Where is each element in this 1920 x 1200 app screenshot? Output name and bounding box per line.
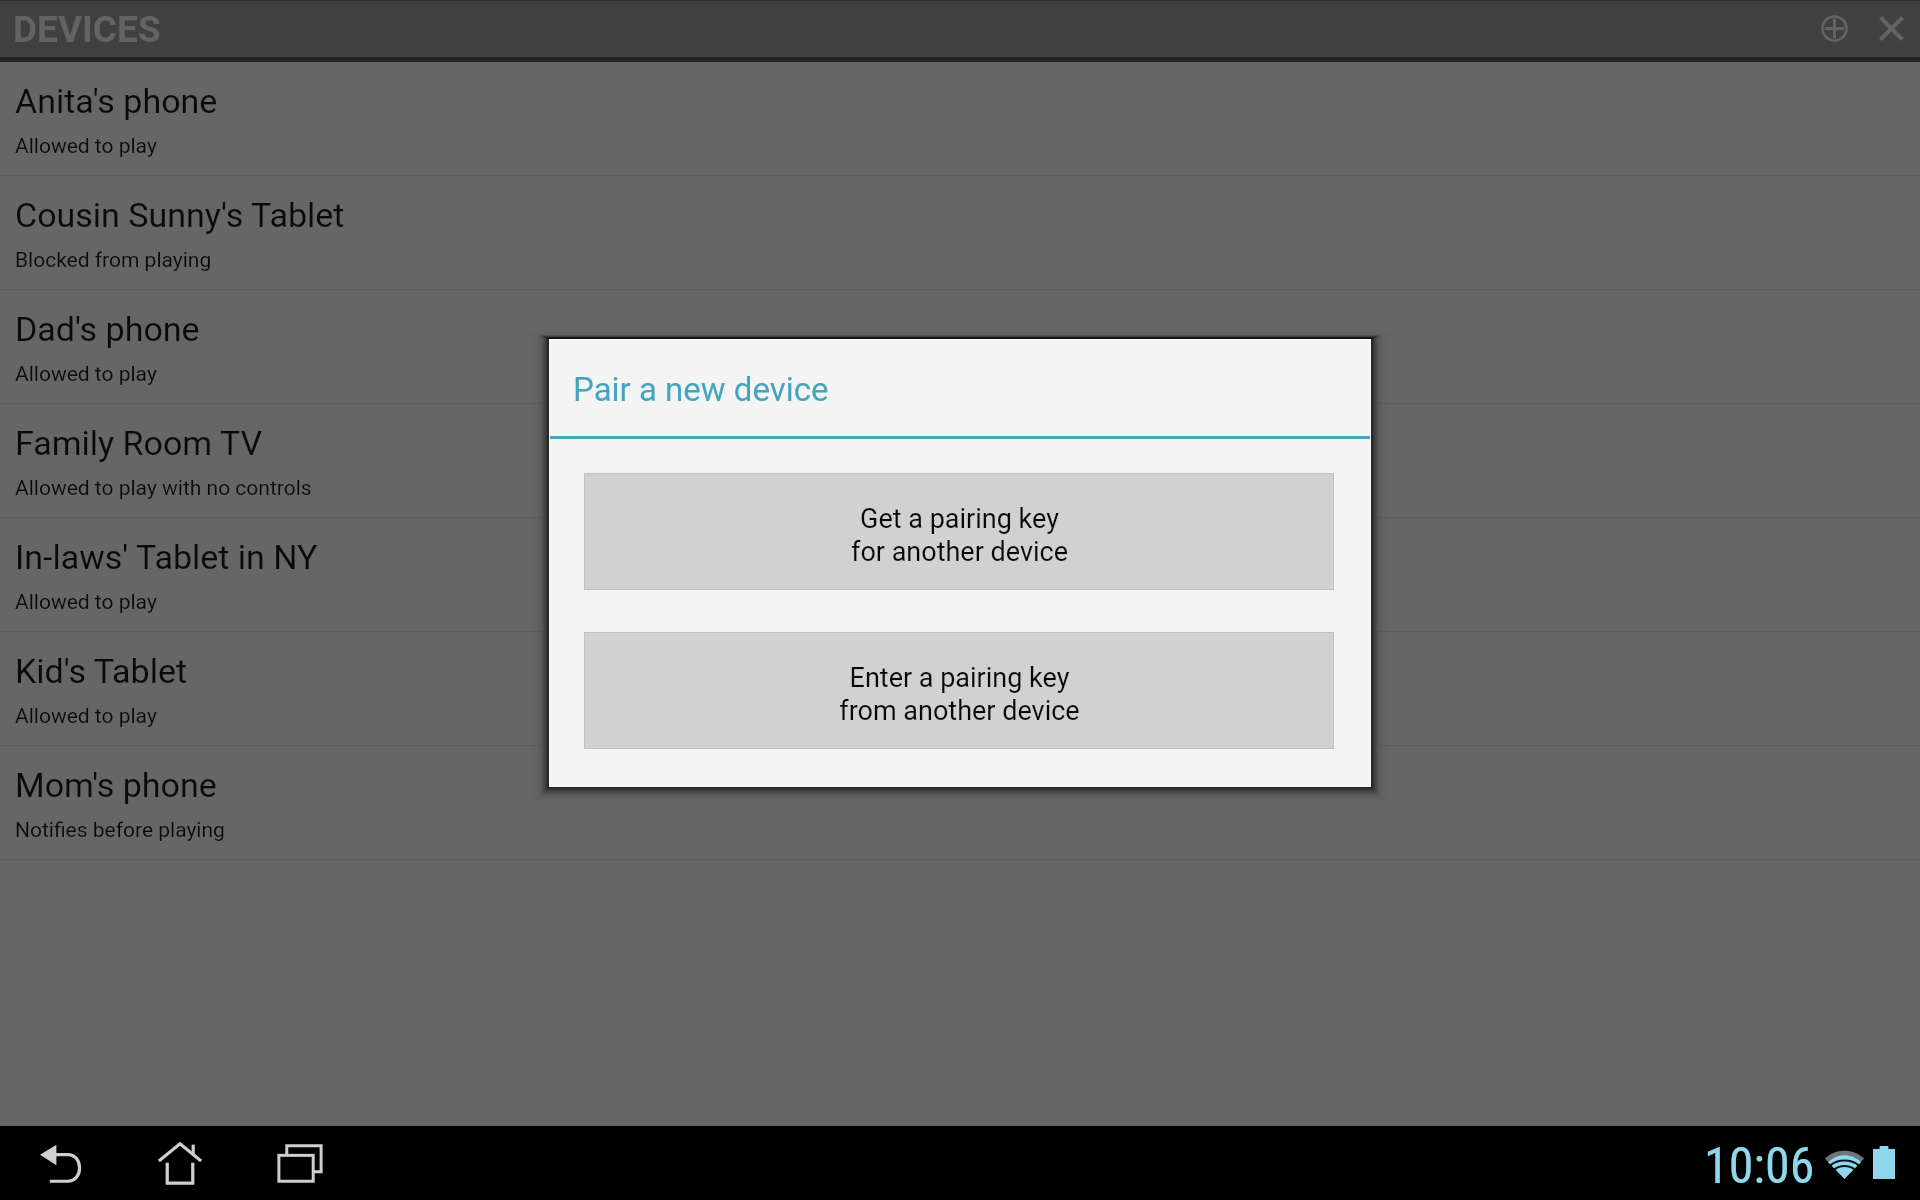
button[interactable]: Dad's phone [0,290,1920,403]
staticText: Allowed to play [15,362,157,387]
staticText: Mom's phone [15,765,217,805]
button[interactable]: Home [120,1126,239,1200]
button[interactable]: In-laws' Tablet in NY [0,518,1920,631]
staticText: Allowed to play [15,704,157,729]
button[interactable]: Close [1863,0,1920,57]
button[interactable]: Kid's Tablet [0,632,1920,745]
staticText: Kid's Tablet [15,651,188,691]
staticText: Enter a pairing key from another device [839,662,1080,726]
button[interactable]: Mom's phone [0,746,1920,859]
button[interactable]: Recent apps [240,1126,359,1200]
button[interactable]: Add device [1806,0,1863,57]
button[interactable]: Anita's phone [0,62,1920,175]
staticText: Get a pairing key for another device [851,503,1068,567]
button[interactable]: Cousin Sunny's Tablet [0,176,1920,289]
staticText: Family Room TV [15,423,263,463]
staticText: In-laws' Tablet in NY [15,537,318,577]
button[interactable]: Enter a pairing key from another device [584,632,1334,749]
button[interactable]: Get a pairing key for another device [584,473,1334,590]
button[interactable]: Family Room TV [0,404,1920,517]
staticText: Allowed to play with no controls [15,476,312,501]
staticText: Dad's phone [15,309,200,349]
staticText: 10:06 [1704,1137,1815,1196]
button[interactable]: Back [1,1126,120,1200]
staticText: Notifies before playing [15,818,225,843]
staticText: Allowed to play [15,134,157,159]
staticText: Anita's phone [15,81,218,121]
staticText: Blocked from playing [15,248,212,273]
staticText: DEVICES [13,8,161,51]
staticText: Cousin Sunny's Tablet [15,195,345,235]
staticText: Pair a new device [573,370,829,409]
staticText: Allowed to play [15,590,157,615]
